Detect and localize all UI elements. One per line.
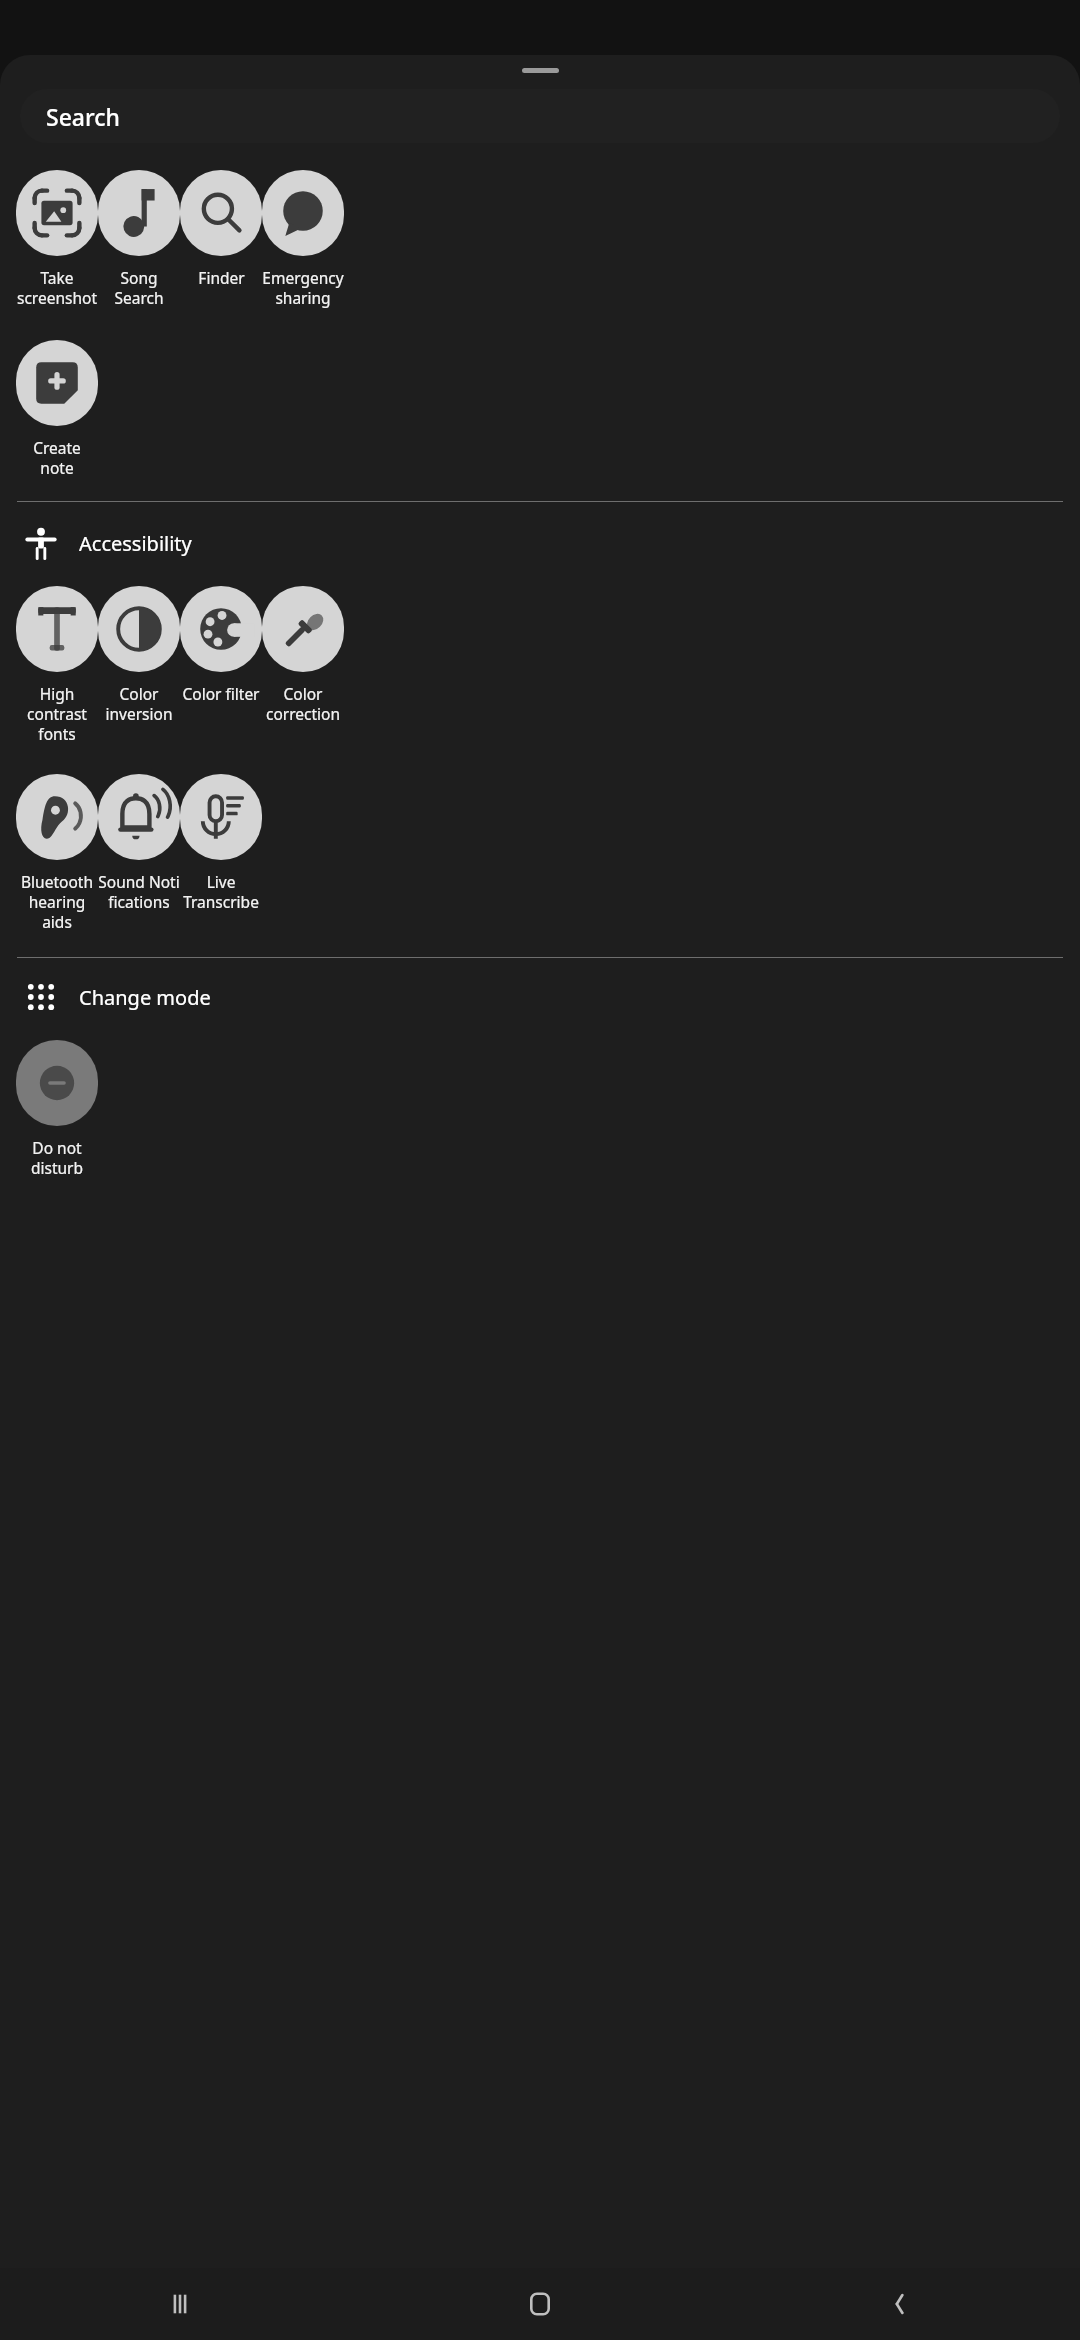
- button[interactable]: Color inversion: [98, 584, 180, 724]
- button[interactable]: Color filter: [180, 584, 262, 704]
- staticText: Accessibility: [79, 530, 192, 557]
- button[interactable]: Do not disturb: [16, 1038, 98, 1178]
- button[interactable]: Create note: [16, 338, 98, 478]
- button[interactable]: Home: [360, 2268, 720, 2340]
- button[interactable]: Take screenshot: [16, 168, 98, 308]
- staticText: Live Transcribe: [180, 871, 262, 912]
- staticText: High contrast fonts: [16, 683, 98, 744]
- button[interactable]: Emergency sharing: [262, 168, 344, 308]
- button[interactable]: Color correction: [262, 584, 344, 724]
- button[interactable]: High contrast fonts: [16, 584, 98, 744]
- button[interactable]: Search: [20, 89, 1060, 143]
- staticText: Sound Notifications: [98, 871, 180, 912]
- staticText: Take screenshot: [16, 267, 98, 308]
- staticText: Color filter: [182, 683, 260, 704]
- staticText: Change mode: [79, 984, 211, 1011]
- staticText: Do not disturb: [16, 1137, 98, 1178]
- button[interactable]: Live Transcribe: [180, 772, 262, 912]
- staticText: Bluetooth hearing aids: [16, 871, 98, 932]
- staticText: Color inversion: [98, 683, 180, 724]
- staticText: Search: [46, 101, 120, 132]
- button[interactable]: Sound Notifications: [98, 772, 180, 912]
- button[interactable]: Back: [720, 2268, 1080, 2340]
- staticText: Finder: [198, 267, 245, 288]
- button[interactable]: Finder: [180, 168, 262, 288]
- button[interactable]: Recent apps: [0, 2268, 360, 2340]
- staticText: Create note: [16, 437, 98, 478]
- button[interactable]: Song Search: [98, 168, 180, 308]
- staticText: Color correction: [262, 683, 344, 724]
- staticText: Emergency sharing: [262, 267, 344, 308]
- staticText: Song Search: [98, 267, 180, 308]
- button[interactable]: Bluetooth hearing aids: [16, 772, 98, 932]
